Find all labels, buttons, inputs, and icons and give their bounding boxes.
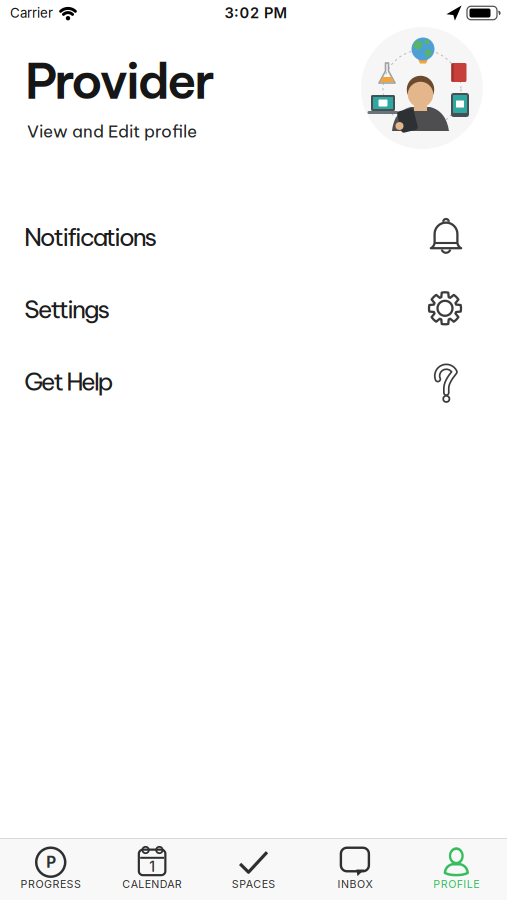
- button[interactable]: Get Help: [24, 349, 463, 413]
- staticText: View and Edit profile: [27, 120, 197, 142]
- button[interactable]: 1: [102, 839, 203, 897]
- button[interactable]: INBOX: [304, 839, 405, 897]
- staticText: Notifications: [24, 221, 158, 253]
- staticText: PROFILE: [433, 878, 479, 890]
- staticText: Provider: [25, 50, 214, 112]
- button[interactable]: Notifications: [24, 205, 463, 269]
- staticText: SPACES: [232, 878, 275, 890]
- staticText: P: [46, 853, 56, 871]
- staticText: Settings: [24, 294, 111, 325]
- staticText: INBOX: [337, 878, 372, 890]
- staticText: 1: [149, 858, 155, 875]
- staticText: 3:02 PM: [224, 4, 287, 22]
- button[interactable]: Settings: [24, 277, 463, 341]
- staticText: PROGRESS: [20, 878, 81, 890]
- button[interactable]: PROFILE: [406, 839, 507, 897]
- staticText: CALENDAR: [122, 878, 182, 890]
- staticText: Get Help: [24, 366, 114, 397]
- button[interactable]: Profile photo: [361, 27, 483, 149]
- staticText: Carrier: [10, 5, 53, 21]
- button[interactable]: SPACES: [203, 839, 304, 897]
- button[interactable]: P: [0, 839, 101, 897]
